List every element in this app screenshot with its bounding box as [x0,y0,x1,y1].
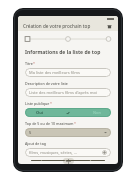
button[interactable]: Supprimer [105,22,113,30]
staticText: * [33,61,35,66]
staticText: Informations de la liste de top [25,49,101,56]
staticText: Ajout de tag [25,141,46,146]
staticText: Non [93,110,101,115]
staticText: Top de 5 ou de 10 maximum [25,121,74,126]
staticText: Ma liste des meilleurs films [29,70,80,75]
button[interactable]: 5 [25,128,111,137]
button[interactable]: Oui [25,108,53,117]
button[interactable]: Accueil [31,160,55,161]
staticText: Création de votre prochain top [23,23,105,29]
staticText: Oui [36,110,43,115]
button[interactable]: films, musiques, séries, ... [25,148,111,157]
button[interactable]: Non [82,108,111,117]
staticText: Liste publique [25,101,50,106]
button[interactable]: Liste des meilleurs films d'après moi [25,88,111,97]
button[interactable]: Ajouter un tag [102,150,107,155]
staticText: * [50,101,52,106]
button[interactable]: Ajouter [63,158,74,164]
staticText: Description de votre liste [25,81,68,86]
staticText: films, musiques, séries, ... [29,150,102,155]
staticText: Titre [25,61,33,66]
button[interactable]: Sélectionné [53,108,82,117]
staticText: * [74,121,76,126]
staticText: 5 [29,130,104,135]
staticText: Liste des meilleurs films d'après moi [29,90,97,95]
button[interactable]: Top [55,160,80,161]
button[interactable]: Profil [80,160,105,161]
button[interactable]: Ma liste des meilleurs films [25,68,111,77]
